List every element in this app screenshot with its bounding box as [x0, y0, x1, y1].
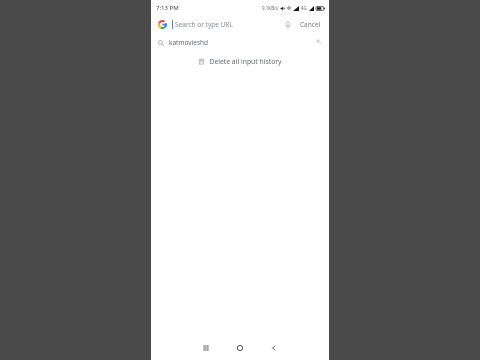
- staticText: Search or type URL: [175, 20, 233, 29]
- staticText: 4G: [301, 5, 307, 11]
- staticText: Delete all input history: [209, 57, 282, 66]
- button[interactable]: Back: [257, 336, 291, 360]
- button[interactable]: Cancel: [297, 17, 324, 32]
- button[interactable]: Delete all input history: [151, 54, 329, 68]
- staticText: katmovieshd: [169, 38, 314, 47]
- button[interactable]: Voice search: [280, 17, 295, 32]
- button[interactable]: Search or type URL: [175, 15, 280, 34]
- staticText: Cancel: [300, 20, 321, 29]
- button[interactable]: Google: [156, 18, 169, 31]
- staticText: 9.1KB/s: [262, 5, 278, 11]
- staticText: 7:13 PM: [156, 4, 179, 12]
- button[interactable]: Recent apps: [189, 336, 223, 360]
- button[interactable]: Insert suggestion: [314, 37, 324, 47]
- button[interactable]: Home: [223, 336, 257, 360]
- button[interactable]: katmovieshd: [151, 35, 329, 49]
